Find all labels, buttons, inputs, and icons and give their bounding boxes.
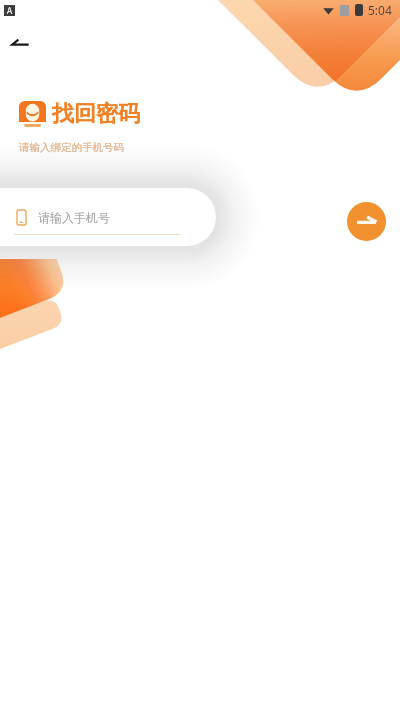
button[interactable]: 请输入手机号 (0, 188, 216, 246)
staticText: 请输入绑定的手机号码 (19, 141, 124, 154)
staticText: A (7, 5, 13, 16)
button[interactable]: Next (347, 202, 386, 241)
button[interactable]: Back (5, 26, 41, 62)
staticText: 5:04 (368, 2, 392, 18)
staticText: 请输入手机号 (38, 210, 110, 225)
staticText: 找回密码 (52, 100, 140, 128)
